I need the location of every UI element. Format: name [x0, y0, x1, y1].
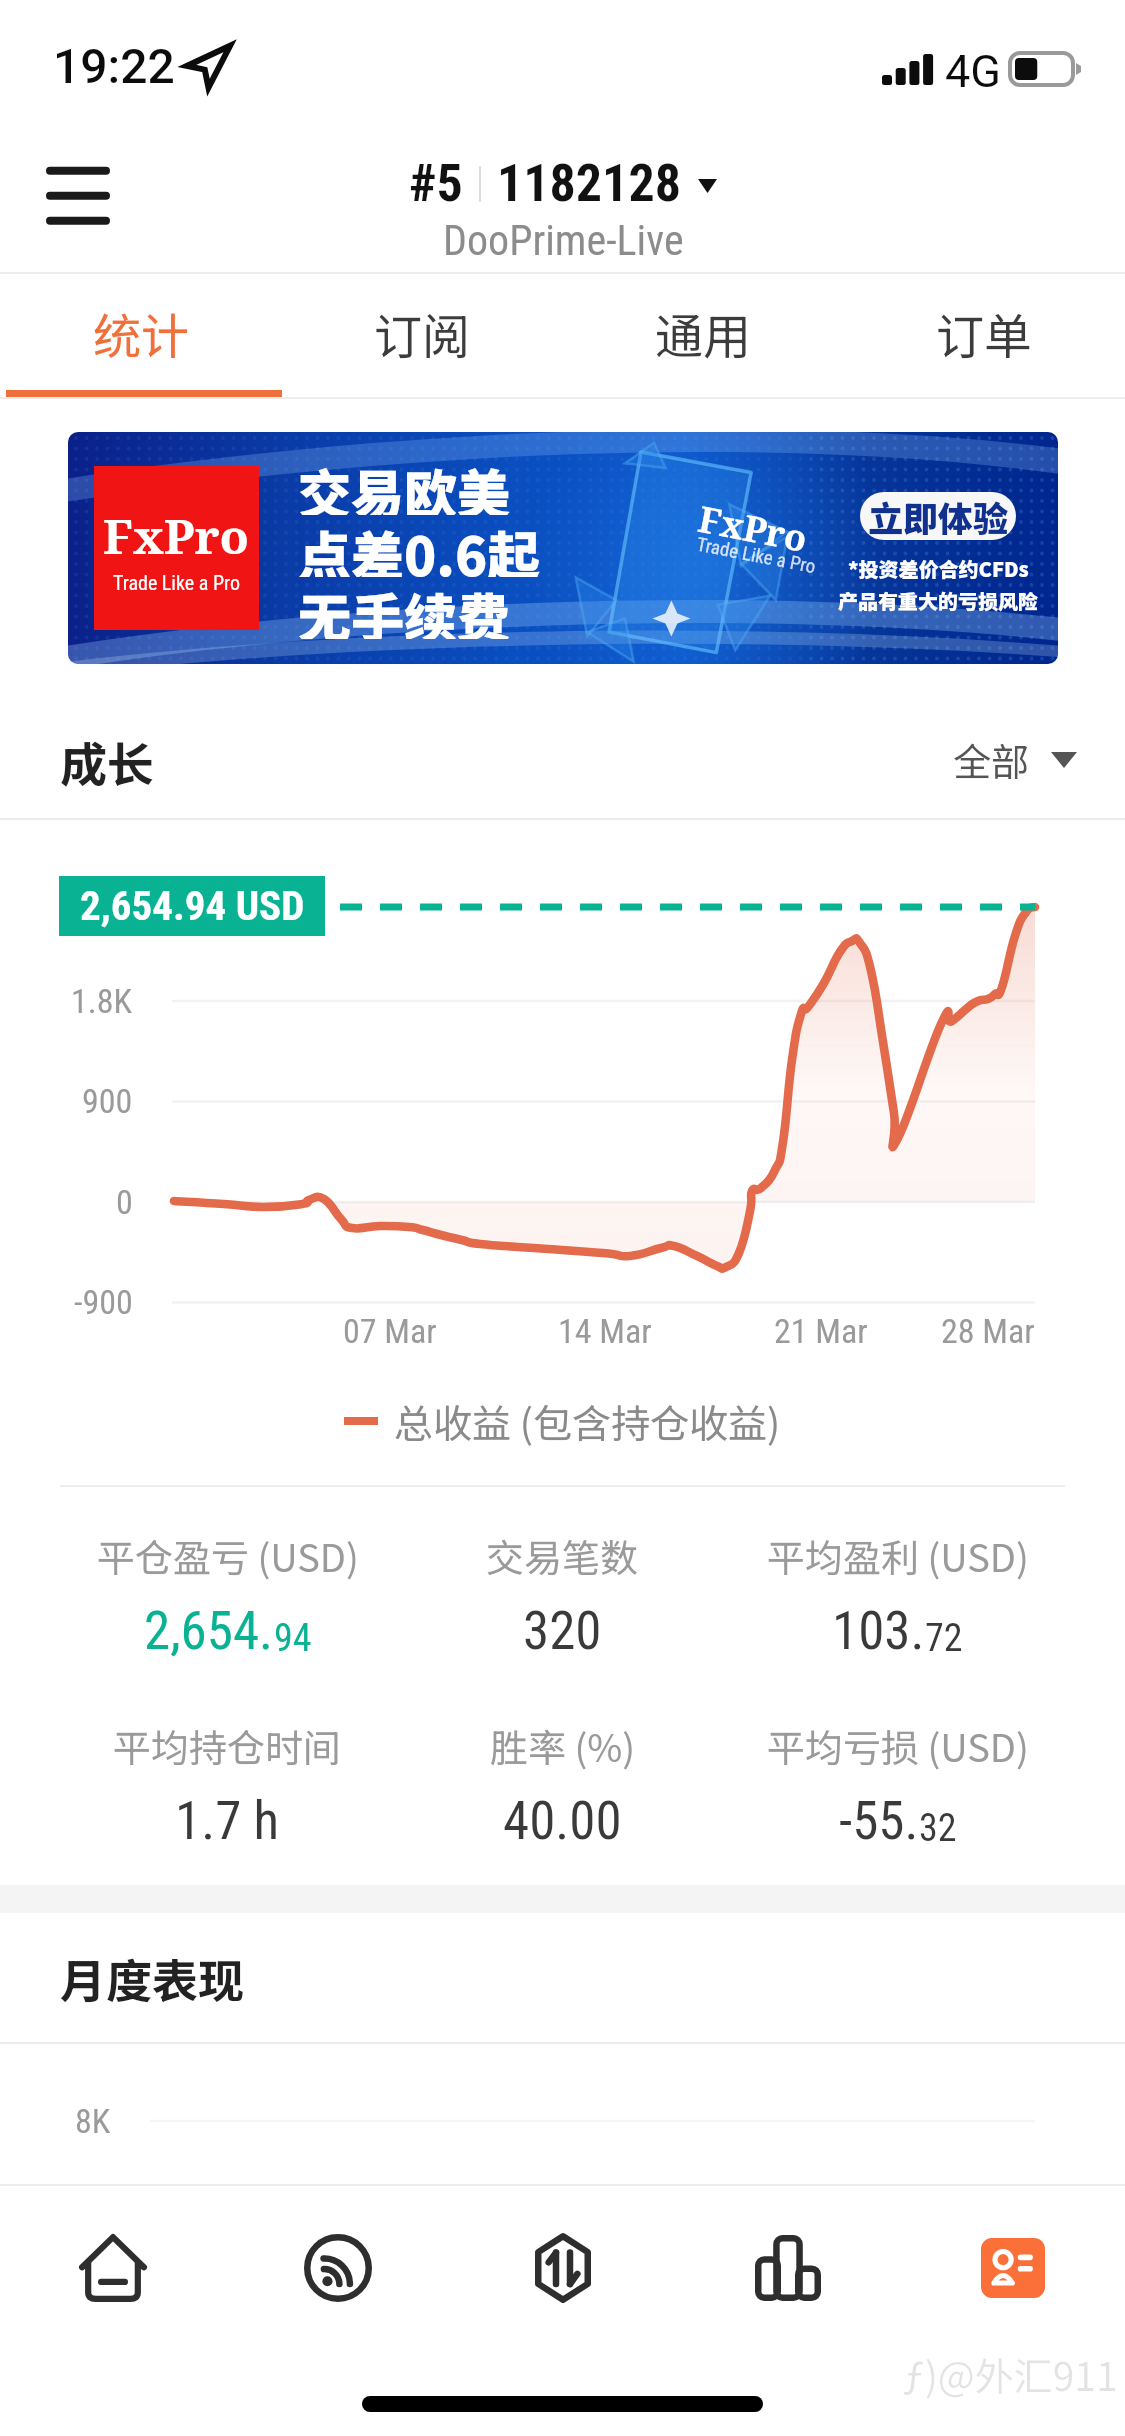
staticText: 72	[925, 1616, 963, 1661]
staticText: 无手续费	[298, 577, 510, 639]
staticText: 2,654.	[144, 1600, 274, 1662]
staticText: 月度表现	[60, 1945, 244, 2012]
staticText: 统计	[93, 298, 190, 368]
staticText: -900	[74, 1282, 133, 1322]
staticText: 总收益 (包含持仓收益)	[394, 1393, 781, 1449]
staticText: DooPrime-Live	[443, 216, 684, 265]
button[interactable]: Profile	[900, 2186, 1125, 2351]
staticText: 8K	[75, 2101, 111, 2141]
button[interactable]: 全部	[953, 732, 1077, 787]
staticText: 订单	[936, 298, 1033, 368]
staticText: 平仓盈亏 (USD)	[97, 1528, 359, 1583]
staticText: 07 Mar	[343, 1311, 437, 1351]
staticText: 平均盈利 (USD)	[767, 1528, 1029, 1583]
button[interactable]: Menu	[26, 146, 132, 238]
staticText: 32	[919, 1806, 957, 1851]
staticText: 点差0.6起	[298, 515, 541, 577]
staticText: 4G	[945, 45, 1001, 98]
staticText: 订阅	[374, 298, 471, 368]
staticText: 1182128	[497, 153, 681, 214]
staticText: 平均亏损 (USD)	[767, 1718, 1029, 1773]
button[interactable]: Signals	[225, 2186, 450, 2351]
staticText: 立即体验	[868, 492, 1009, 539]
staticText: 平均持仓时间	[113, 1718, 342, 1773]
staticText: ƒ)@外汇911	[903, 2346, 1118, 2402]
staticText: 1.8K	[71, 981, 133, 1021]
staticText: 14 Mar	[558, 1311, 652, 1351]
staticText: Trade Like a Pro	[113, 571, 240, 594]
staticText: #5	[409, 153, 463, 214]
staticText: 28 Mar	[941, 1311, 1035, 1351]
staticText: *投资差价合约CFDs	[848, 554, 1029, 583]
staticText: 94	[274, 1616, 312, 1661]
staticText: 40.00	[503, 1790, 622, 1852]
staticText: 2,654.94 USD	[80, 882, 305, 930]
button[interactable]: 统计	[0, 274, 282, 398]
staticText: 1.7 h	[175, 1790, 280, 1852]
button[interactable]: Trade	[450, 2186, 675, 2351]
staticText: 19:22	[53, 38, 175, 94]
staticText: -55.	[839, 1790, 919, 1852]
button[interactable]: #5	[409, 153, 717, 265]
staticText: 成长	[60, 727, 154, 795]
button[interactable]: Statistics	[675, 2186, 900, 2351]
staticText: FxPro	[103, 503, 250, 568]
staticText: 0	[116, 1182, 133, 1222]
staticText: 103.	[832, 1600, 925, 1662]
button[interactable]: FxPro	[68, 432, 1058, 664]
staticText: FxPro	[694, 494, 812, 563]
staticText: 交易笔数	[486, 1528, 639, 1583]
button[interactable]: Home	[0, 2186, 225, 2351]
staticText: 21 Mar	[774, 1311, 868, 1351]
staticText: 交易欧美	[298, 453, 510, 515]
button[interactable]: 订阅	[282, 274, 563, 398]
staticText: 320	[523, 1600, 602, 1662]
staticText: Trade Like a Pro	[695, 533, 818, 577]
button[interactable]: 订单	[844, 274, 1125, 398]
staticText: 胜率 (%)	[490, 1718, 636, 1773]
staticText: 通用	[655, 298, 752, 368]
staticText: 全部	[953, 732, 1030, 787]
staticText: 产品有重大的亏损风险	[838, 586, 1038, 615]
button[interactable]: 通用	[563, 274, 844, 398]
staticText: 900	[82, 1081, 133, 1121]
